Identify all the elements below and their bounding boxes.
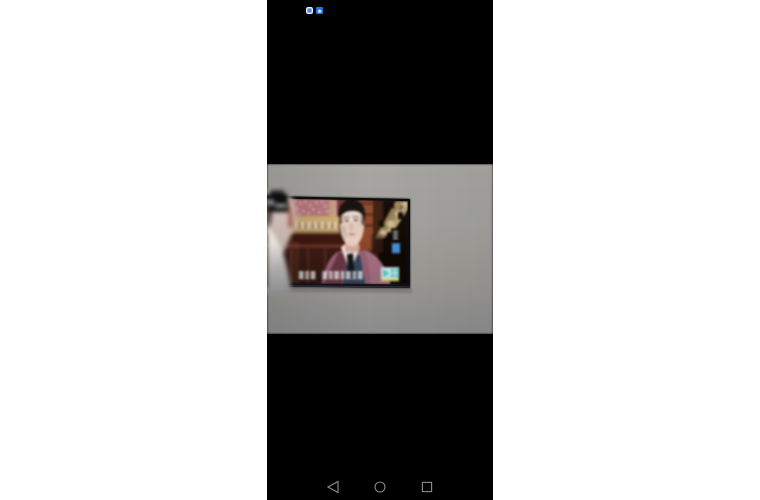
button[interactable]: Home <box>362 474 398 500</box>
button[interactable]: Recent apps <box>409 474 445 500</box>
button[interactable]: Back <box>315 474 351 500</box>
button[interactable]: Back <box>267 0 493 500</box>
